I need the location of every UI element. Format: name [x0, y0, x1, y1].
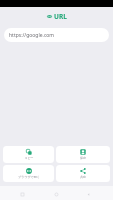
staticText: URL [54, 12, 67, 21]
button[interactable]: ブラウザで開く [3, 165, 54, 182]
staticText: ブラウザで開く [18, 175, 40, 179]
staticText: 共有 [80, 175, 86, 179]
staticText: 保存 [80, 156, 86, 160]
button[interactable]: Home [51, 189, 62, 200]
button[interactable]: 保存 [56, 146, 110, 163]
button[interactable]: https://google.com [4, 28, 109, 42]
button[interactable]: Back [83, 189, 94, 200]
staticText: https://google.com [9, 32, 54, 39]
button[interactable]: 共有 [56, 165, 110, 182]
button[interactable]: Recents [17, 189, 28, 200]
button[interactable]: コピー [3, 146, 54, 163]
staticText: コピー [24, 156, 34, 160]
